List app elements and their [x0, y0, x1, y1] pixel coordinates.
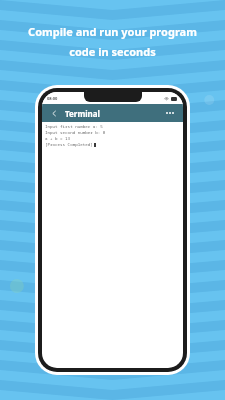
- button[interactable]: More options: [163, 106, 177, 120]
- staticText: a + b = 13: [45, 136, 71, 142]
- staticText: Terminal: [65, 108, 100, 119]
- staticText: code in seconds: [69, 44, 156, 59]
- staticText: Compile and run your program: [28, 24, 197, 39]
- button[interactable]: Back: [48, 107, 60, 119]
- staticText: Input first number a: 5: [45, 124, 103, 130]
- staticText: Input second number b: 8: [45, 130, 106, 136]
- staticText: 08:00: [47, 96, 58, 101]
- staticText: [Process Completed]: [45, 142, 93, 148]
